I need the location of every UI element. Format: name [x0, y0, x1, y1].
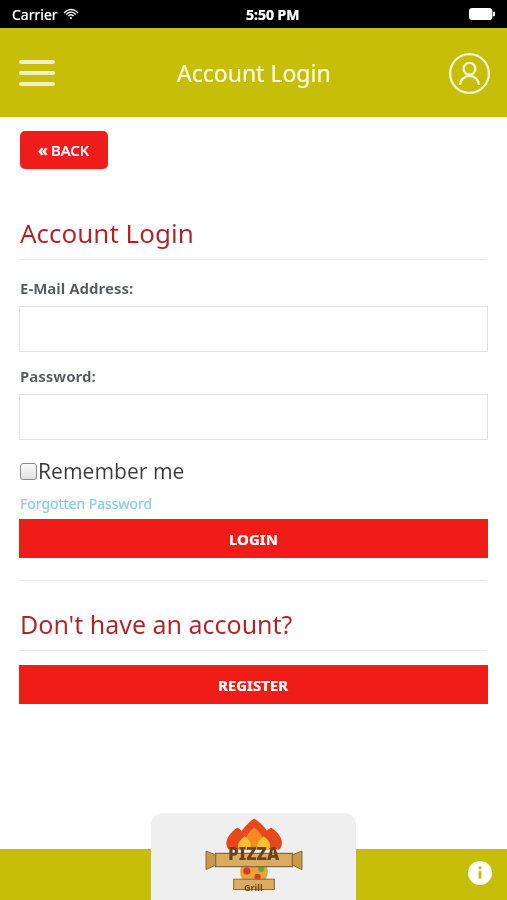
staticText: Remember me	[38, 457, 185, 486]
button[interactable]: Forgotten Password	[20, 494, 153, 513]
button[interactable]: REGISTER	[19, 665, 488, 704]
button[interactable]: «	[20, 131, 108, 169]
staticText: Password:	[20, 366, 96, 386]
staticText: BACK	[51, 140, 90, 160]
button[interactable]: Remember me	[20, 456, 185, 486]
staticText: Account Login	[177, 57, 331, 88]
button[interactable]: LOGIN	[19, 519, 488, 558]
staticText: 5:50 PM	[246, 5, 300, 24]
staticText: Forgotten Password	[20, 494, 153, 513]
button[interactable]: PIZZA	[151, 813, 356, 900]
staticText: Grill	[244, 881, 263, 893]
button[interactable]: Menu	[10, 46, 64, 100]
staticText: Don't have an account?	[20, 607, 293, 641]
button[interactable]	[19, 394, 488, 440]
staticText: PIZZA	[228, 842, 280, 865]
staticText: Account Login	[20, 215, 194, 250]
staticText: E-Mail Address:	[20, 278, 134, 298]
staticText: Carrier	[12, 5, 58, 24]
button[interactable]	[19, 306, 488, 352]
button[interactable]: Information	[463, 856, 497, 890]
staticText: LOGIN	[229, 529, 278, 549]
staticText: «	[38, 139, 48, 161]
button[interactable]: Account	[445, 49, 493, 97]
staticText: REGISTER	[218, 675, 289, 695]
